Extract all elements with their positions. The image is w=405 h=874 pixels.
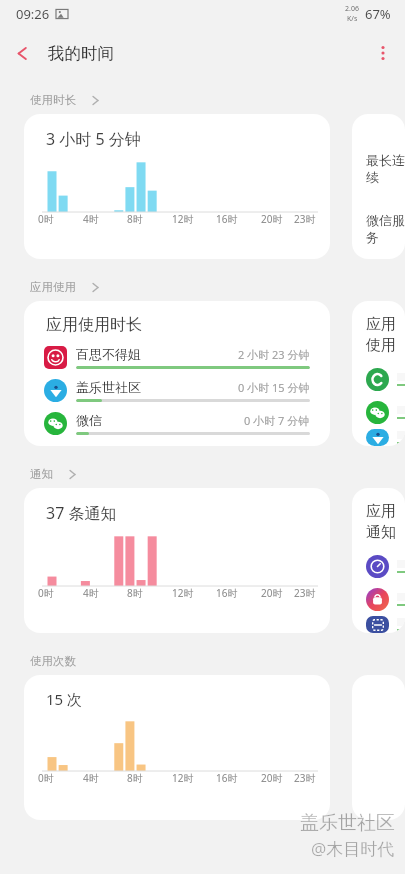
staticText: 12时 (172, 212, 194, 226)
staticText: 使用时长 (30, 93, 76, 107)
staticText: 20时 (261, 771, 283, 785)
staticText: 16时 (216, 586, 238, 600)
button[interactable] (352, 396, 405, 429)
button[interactable]: 微信 (24, 407, 330, 440)
staticText: 23时 (294, 586, 316, 600)
staticText: 0时 (38, 212, 54, 226)
staticText: 4时 (83, 771, 99, 785)
staticText: 2 小时 23 分钟 (238, 347, 310, 362)
staticText: 0时 (38, 586, 54, 600)
button[interactable]: 3 小时 5 分钟 (24, 114, 330, 259)
staticText: 微信 (76, 412, 102, 428)
button[interactable]: 37 条通知 (24, 488, 330, 633)
staticText: 最长连续 (366, 152, 405, 186)
staticText: 67% (365, 5, 391, 23)
staticText: 12时 (172, 586, 194, 600)
button[interactable] (352, 583, 405, 616)
staticText: 应用使用 (366, 315, 405, 355)
button[interactable] (352, 675, 405, 820)
staticText: 20时 (261, 212, 283, 226)
button[interactable]: 15 次 (24, 675, 330, 820)
staticText: 16时 (216, 771, 238, 785)
staticText: 8时 (127, 771, 143, 785)
button[interactable]: 百思不得姐 (24, 341, 330, 374)
staticText: 3 小时 5 分钟 (46, 128, 141, 150)
staticText: 0时 (38, 771, 54, 785)
staticText: 23时 (294, 771, 316, 785)
staticText: 0 小时 7 分钟 (244, 413, 310, 428)
button[interactable]: 应用通知 (352, 488, 405, 633)
staticText: @木目时代 (311, 837, 395, 860)
button[interactable] (352, 429, 405, 446)
button[interactable]: 更多选项 (361, 31, 405, 75)
staticText: 20时 (261, 586, 283, 600)
button[interactable]: 盖乐世社区 (24, 374, 330, 407)
button[interactable]: 应用使用 (0, 273, 405, 301)
button[interactable]: 使用次数 (0, 647, 405, 675)
button[interactable]: 使用时长 (0, 86, 405, 114)
button[interactable] (352, 550, 405, 583)
button[interactable]: 应用使用时长 (24, 301, 330, 446)
staticText: 应用使用 (30, 280, 76, 294)
button[interactable]: 应用使用 (352, 301, 405, 446)
button[interactable]: 返回 (0, 31, 44, 75)
staticText: 我的时间 (48, 43, 114, 64)
staticText: 4时 (83, 586, 99, 600)
staticText: 通知 (30, 467, 53, 481)
staticText: 16时 (216, 212, 238, 226)
staticText: 2.06 (345, 4, 359, 14)
staticText: 微信服务 (366, 212, 405, 246)
button[interactable] (352, 616, 405, 633)
staticText: 4时 (83, 212, 99, 226)
staticText: 盖乐世社区 (76, 379, 141, 395)
staticText: 23时 (294, 212, 316, 226)
staticText: 百思不得姐 (76, 346, 141, 362)
staticText: 应用使用时长 (46, 315, 142, 335)
staticText: 8时 (127, 586, 143, 600)
button[interactable]: 通知 (0, 460, 405, 488)
staticText: 使用次数 (30, 654, 76, 668)
staticText: 12时 (172, 771, 194, 785)
staticText: 37 条通知 (46, 502, 117, 524)
staticText: 8时 (127, 212, 143, 226)
staticText: 应用通知 (366, 502, 405, 542)
staticText: 0 小时 15 分钟 (238, 380, 310, 395)
button[interactable] (352, 363, 405, 396)
button[interactable]: 最长连续 (352, 114, 405, 259)
staticText: 09:26 (16, 5, 50, 23)
staticText: 15 次 (46, 689, 83, 709)
staticText: K/s (347, 14, 358, 24)
staticText: 盖乐世社区 (300, 811, 395, 835)
